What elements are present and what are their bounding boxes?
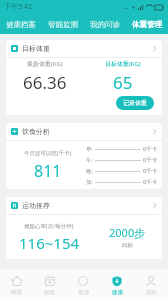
staticText: ...	[123, 2, 129, 12]
staticText: 体重管理	[132, 20, 162, 29]
staticText: 下午5:42	[4, 2, 32, 12]
button[interactable]: 饮食分析	[6, 123, 162, 140]
button[interactable]: 我的问诊	[84, 14, 126, 34]
staticText: 66.36	[23, 71, 67, 94]
staticText: 发现	[78, 289, 89, 296]
staticText: 智能监测	[48, 20, 78, 29]
staticText: 记录体重	[123, 99, 147, 107]
staticText: 0千卡	[143, 167, 158, 175]
staticText: 晚:	[86, 167, 93, 175]
staticText: 运动推荐	[22, 201, 50, 210]
staticText: 燃脂心率(次/每分钟)	[24, 222, 74, 230]
staticText: 健康档案	[6, 20, 36, 29]
button[interactable]: 体重管理	[126, 14, 168, 34]
staticText: 我的	[146, 289, 157, 296]
staticText: 今日还可以吃(千卡)	[24, 149, 72, 157]
staticText: 饮食分析	[22, 127, 50, 136]
button[interactable]: 运动推荐	[6, 197, 162, 214]
staticText: 加:	[86, 178, 93, 186]
staticText: 0千卡	[143, 178, 158, 186]
button[interactable]: 测量	[33, 270, 66, 300]
button[interactable]: 健康档案	[0, 14, 42, 34]
staticText: 0千卡	[143, 156, 158, 164]
staticText: 目标	[122, 242, 133, 249]
staticText: 65	[113, 71, 133, 94]
button[interactable]: 记录体重	[116, 96, 154, 110]
staticText: 我的问诊	[90, 20, 120, 29]
button[interactable]: 商城	[0, 270, 33, 300]
staticText: 测量	[44, 289, 55, 296]
button[interactable]: 智能监测	[42, 14, 84, 34]
staticText: 早:	[86, 145, 93, 153]
staticText: 午:	[86, 156, 93, 164]
staticText: 811	[34, 160, 62, 182]
button[interactable]: 我的	[134, 270, 168, 300]
button[interactable]: 发现	[66, 270, 100, 300]
staticText: 目标体重(KG)	[105, 60, 141, 68]
button[interactable]: 目标体重	[6, 40, 162, 57]
staticText: 最新体重(KG)	[27, 60, 63, 68]
staticText: 商城	[11, 289, 22, 296]
staticText: 116~154	[19, 233, 80, 253]
staticText: 目标体重	[22, 44, 50, 53]
staticText: 0千卡	[143, 145, 158, 153]
staticText: 2000步	[109, 225, 146, 240]
staticText: 健康	[112, 289, 123, 296]
button[interactable]: 健康	[100, 270, 134, 300]
